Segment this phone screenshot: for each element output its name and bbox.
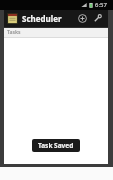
staticText: Scheduler [22,13,62,24]
staticText: 6:57 [95,1,107,9]
button[interactable]: Settings [90,11,105,26]
button[interactable] [7,13,18,24]
staticText: Tasks [7,29,21,36]
button[interactable]: Add task [75,11,90,26]
staticText: Task Saved [38,141,74,150]
button[interactable]: Tasks [4,28,108,37]
